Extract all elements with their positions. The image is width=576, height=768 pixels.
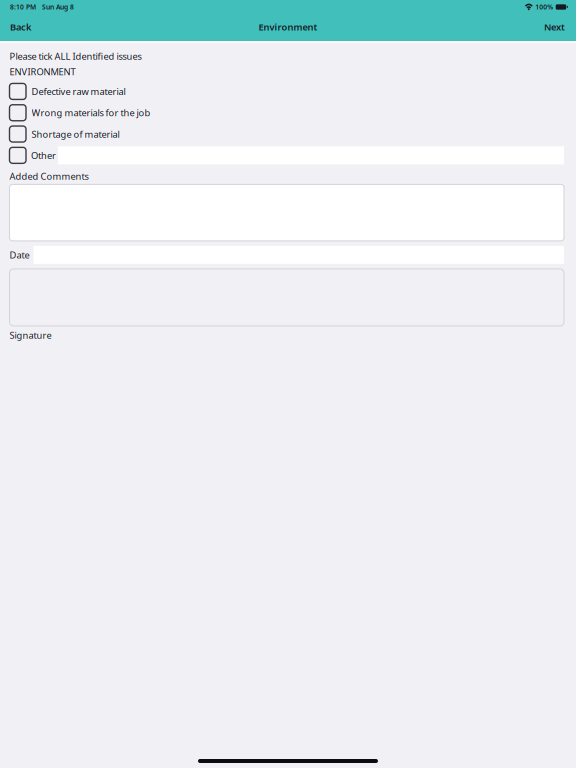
button[interactable]: Defective raw material — [0, 81, 576, 102]
staticText: Signature — [9, 329, 51, 341]
staticText: Shortage of material — [31, 128, 119, 140]
staticText: Back — [10, 21, 31, 33]
staticText: Please tick ALL Identified issues — [9, 50, 141, 62]
staticText: Date — [9, 249, 29, 261]
staticText: Sun Aug 8 — [42, 3, 74, 11]
staticText: Other — [31, 149, 56, 161]
staticText: Environment — [258, 21, 317, 33]
staticText: ENVIRONMENT — [9, 65, 75, 78]
staticText: 8:10 PM — [10, 3, 36, 11]
staticText: 100% — [535, 3, 553, 11]
button[interactable]: Next — [534, 16, 576, 38]
button[interactable]: Back — [0, 16, 41, 38]
button[interactable]: Added Comments field — [0, 182, 576, 241]
staticText: Added Comments — [9, 170, 88, 182]
staticText: Defective raw material — [31, 85, 125, 98]
staticText: Wrong materials for the job — [31, 106, 150, 119]
button[interactable]: Shortage of material — [0, 123, 576, 145]
button[interactable]: Signature field — [0, 264, 576, 326]
button[interactable]: Other — [0, 145, 576, 166]
button[interactable]: Date — [0, 241, 576, 264]
button[interactable]: Wrong materials for the job — [0, 102, 576, 123]
staticText: Next — [544, 21, 565, 33]
